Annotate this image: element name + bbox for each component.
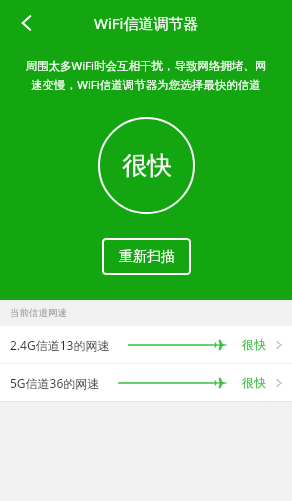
button[interactable]: 重新扫描 [102, 238, 191, 275]
staticText: 很快 [122, 150, 172, 181]
staticText: 周围太多WiFi时会互相干扰，导致网络拥堵、网速变慢，WiFi信道调节器为您选择… [21, 58, 271, 93]
staticText: 5G信道36的网速 [10, 375, 100, 391]
staticText: 很快 [242, 337, 266, 352]
button[interactable]: Back [10, 6, 44, 40]
staticText: 2.4G信道13的网速 [10, 337, 110, 353]
staticText: 当前信道网速 [10, 307, 67, 319]
staticText: 重新扫描 [119, 248, 175, 266]
staticText: WiFi信道调节器 [94, 13, 199, 33]
button[interactable]: 2.4G信道13的网速 [0, 326, 292, 363]
staticText: 很快 [242, 375, 266, 390]
button[interactable]: 5G信道36的网速 [0, 364, 292, 401]
